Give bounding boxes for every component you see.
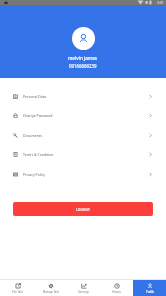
staticText: 09166669239 xyxy=(69,63,97,69)
staticText: Terms & Condition xyxy=(23,152,54,157)
button[interactable]: Profile xyxy=(133,280,166,296)
button[interactable]: Documents xyxy=(0,125,166,145)
staticText: Privacy Policy xyxy=(23,172,46,177)
staticText: Manage Task xyxy=(43,290,59,294)
button[interactable]: Earnings xyxy=(67,280,100,296)
button[interactable]: Privacy Policy xyxy=(0,164,166,184)
button[interactable]: Personal Data xyxy=(0,86,166,106)
staticText: Personal Data xyxy=(23,94,47,99)
staticText: 3:01 xyxy=(157,0,164,5)
staticText: melvin james xyxy=(68,55,98,61)
button[interactable]: Change Password xyxy=(0,106,166,125)
button[interactable]: Terms & Condition xyxy=(0,145,166,164)
button[interactable]: Pick Task xyxy=(0,280,34,296)
staticText: Documents xyxy=(23,133,42,138)
button[interactable]: LOGOUT xyxy=(13,202,153,216)
staticText: LOGOUT xyxy=(76,207,90,212)
staticText: Pick Task xyxy=(12,290,23,294)
button[interactable]: Manage Task xyxy=(34,280,67,296)
button[interactable]: History xyxy=(100,280,133,296)
staticText: Earnings xyxy=(78,290,89,294)
staticText: Change Password xyxy=(23,113,53,118)
staticText: History xyxy=(112,290,121,294)
staticText: Profile xyxy=(146,290,154,294)
